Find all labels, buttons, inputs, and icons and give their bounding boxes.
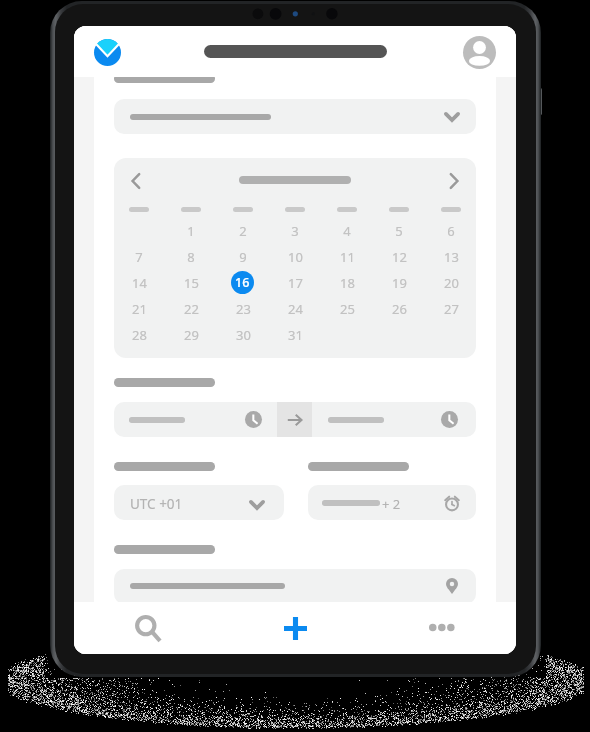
staticText: 17 <box>288 274 303 292</box>
button[interactable]: 31 <box>282 323 308 347</box>
staticText: 15 <box>184 274 199 292</box>
staticText: 27 <box>444 300 459 318</box>
button[interactable]: 13 <box>438 245 464 269</box>
button[interactable]: 2 <box>230 219 256 243</box>
button[interactable]: 26 <box>386 297 412 321</box>
staticText: 9 <box>239 248 247 266</box>
button[interactable]: 1 <box>178 219 204 243</box>
staticText: 26 <box>392 300 407 318</box>
button[interactable] <box>114 99 476 134</box>
staticText: 1 <box>187 222 195 240</box>
staticText: 31 <box>288 326 303 344</box>
staticText: 2 <box>239 222 247 240</box>
staticText: 11 <box>340 248 355 266</box>
staticText: 28 <box>132 326 147 344</box>
staticText: 21 <box>132 300 147 318</box>
staticText: 16 <box>235 274 250 291</box>
button[interactable]: 9 <box>230 245 256 269</box>
button[interactable]: 20 <box>438 271 464 295</box>
staticText: 18 <box>340 274 355 292</box>
staticText: 4 <box>343 222 351 240</box>
button[interactable]: 21 <box>126 297 152 321</box>
button[interactable]: End time <box>312 402 476 437</box>
button[interactable]: 29 <box>178 323 204 347</box>
staticText: 30 <box>236 326 251 344</box>
button[interactable]: Previous month <box>122 167 150 195</box>
button[interactable]: Next month <box>440 167 468 195</box>
staticText: 20 <box>444 274 459 292</box>
button[interactable]: 19 <box>386 271 412 295</box>
button[interactable]: Add event <box>269 602 321 654</box>
button[interactable]: 18 <box>334 271 360 295</box>
button[interactable]: 27 <box>438 297 464 321</box>
staticText: 3 <box>291 222 299 240</box>
button[interactable]: 16 <box>231 271 254 294</box>
staticText: 7 <box>135 248 143 266</box>
button[interactable]: 6 <box>438 219 464 243</box>
button[interactable]: More options <box>416 602 468 654</box>
button[interactable]: Mail app logo <box>94 39 121 66</box>
staticText: UTC +01 <box>130 495 183 513</box>
staticText: 19 <box>392 274 407 292</box>
staticText: 13 <box>444 248 459 266</box>
button[interactable]: Account <box>463 36 496 69</box>
staticText: + 2 <box>382 495 401 513</box>
staticText: 23 <box>236 300 251 318</box>
button[interactable]: 10 <box>282 245 308 269</box>
staticText: 22 <box>184 300 199 318</box>
staticText: 12 <box>392 248 407 266</box>
button[interactable]: 22 <box>178 297 204 321</box>
button[interactable]: Start time <box>114 402 277 437</box>
button[interactable]: To <box>277 402 312 437</box>
staticText: 25 <box>340 300 355 318</box>
button[interactable]: 8 <box>178 245 204 269</box>
button[interactable]: 30 <box>230 323 256 347</box>
button[interactable]: 3 <box>282 219 308 243</box>
button[interactable]: 28 <box>126 323 152 347</box>
staticText: 8 <box>187 248 195 266</box>
button[interactable]: Search <box>122 602 174 654</box>
staticText: 24 <box>288 300 303 318</box>
button[interactable]: 4 <box>334 219 360 243</box>
button[interactable]: 12 <box>386 245 412 269</box>
button[interactable]: 7 <box>126 245 152 269</box>
button[interactable]: UTC +01 <box>114 485 284 520</box>
staticText: 6 <box>447 222 455 240</box>
staticText: 14 <box>132 274 147 292</box>
button[interactable]: 23 <box>230 297 256 321</box>
button[interactable]: 15 <box>178 271 204 295</box>
button[interactable]: + 2 <box>308 485 476 520</box>
staticText: 10 <box>288 248 303 266</box>
button[interactable]: 11 <box>334 245 360 269</box>
staticText: 5 <box>395 222 403 240</box>
button[interactable]: 17 <box>282 271 308 295</box>
button[interactable]: 14 <box>126 271 152 295</box>
button[interactable]: 24 <box>282 297 308 321</box>
button[interactable]: 5 <box>386 219 412 243</box>
button[interactable] <box>114 569 476 604</box>
button[interactable]: 25 <box>334 297 360 321</box>
staticText: 29 <box>184 326 199 344</box>
